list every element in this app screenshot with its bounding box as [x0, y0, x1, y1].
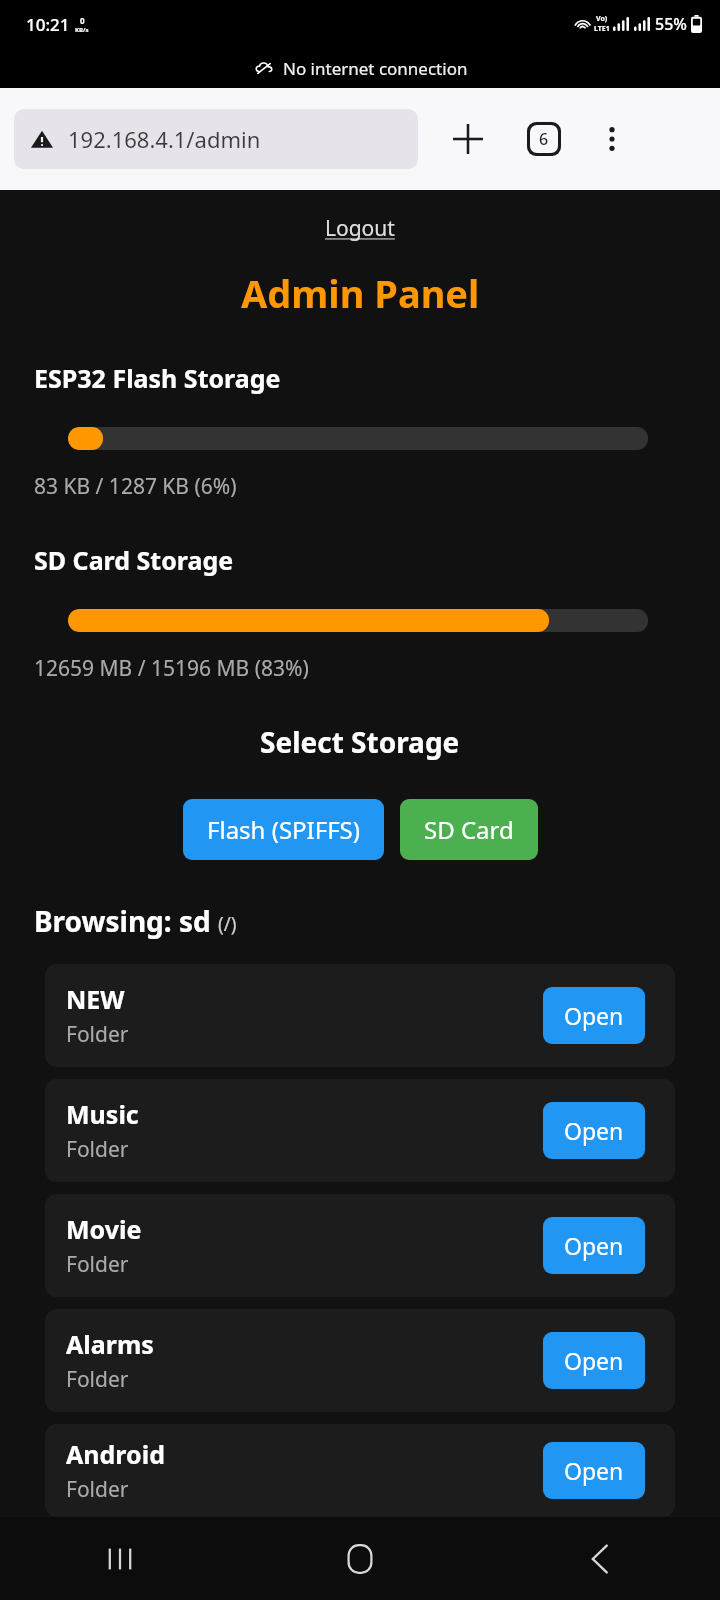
staticText: Admin Panel: [241, 267, 480, 319]
button[interactable]: Recent apps: [0, 1517, 240, 1600]
staticText: 192.168.4.1/admin: [68, 124, 261, 154]
staticText: Alarms: [66, 1327, 154, 1361]
staticText: Vo): [596, 14, 608, 24]
staticText: KB/s: [75, 26, 89, 34]
staticText: NEW: [66, 982, 125, 1016]
staticText: Open: [564, 1000, 624, 1031]
staticText: Music: [66, 1097, 139, 1131]
staticText: Open: [564, 1455, 624, 1486]
staticText: ESP32 Flash Storage: [34, 361, 281, 395]
staticText: 6: [539, 128, 549, 150]
staticText: SD Card Storage: [34, 543, 234, 577]
staticText: No internet connection: [283, 57, 468, 80]
staticText: Android: [66, 1437, 165, 1471]
button[interactable]: Flash (SPIFFS): [183, 799, 384, 860]
button[interactable]: Back: [480, 1517, 720, 1600]
staticText: Open: [564, 1230, 624, 1261]
button[interactable]: Movie: [45, 1194, 675, 1297]
staticText: Folder: [66, 1135, 129, 1164]
button[interactable]: Open: [543, 1102, 645, 1159]
staticText: Folder: [66, 1250, 129, 1279]
button[interactable]: More options: [588, 115, 636, 163]
staticText: Folder: [66, 1365, 129, 1394]
button[interactable]: Open: [543, 1217, 645, 1274]
button[interactable]: Open: [543, 1332, 645, 1389]
staticText: Select Storage: [260, 723, 460, 761]
button[interactable]: Open: [543, 1442, 645, 1499]
staticText: 10:21: [26, 13, 70, 36]
button[interactable]: 192.168.4.1/admin: [14, 109, 418, 169]
button[interactable]: SD Card: [400, 799, 538, 860]
staticText: Browsing: sd: [34, 902, 211, 940]
button[interactable]: New tab: [442, 113, 494, 165]
button[interactable]: Alarms: [45, 1309, 675, 1412]
button[interactable]: Tabs: 6: [518, 113, 570, 165]
button[interactable]: Home: [240, 1517, 480, 1600]
button[interactable]: NEW: [45, 964, 675, 1067]
staticText: (/): [218, 911, 237, 937]
button[interactable]: Android: [45, 1424, 675, 1517]
staticText: Folder: [66, 1020, 129, 1049]
staticText: 0: [80, 15, 85, 26]
staticText: Flash (SPIFFS): [207, 813, 360, 846]
staticText: 83 KB / 1287 KB (6%): [34, 472, 237, 501]
staticText: Open: [564, 1345, 624, 1376]
staticText: Folder: [66, 1475, 129, 1504]
staticText: Movie: [66, 1212, 142, 1246]
button[interactable]: Open: [543, 987, 645, 1044]
staticText: Open: [564, 1115, 624, 1146]
staticText: 55%: [655, 13, 687, 35]
staticText: Logout: [325, 214, 395, 243]
staticText: LTE1: [594, 24, 610, 34]
staticText: SD Card: [424, 813, 514, 846]
staticText: 12659 MB / 15196 MB (83%): [34, 654, 309, 683]
button[interactable]: Music: [45, 1079, 675, 1182]
button[interactable]: Logout: [319, 212, 401, 245]
